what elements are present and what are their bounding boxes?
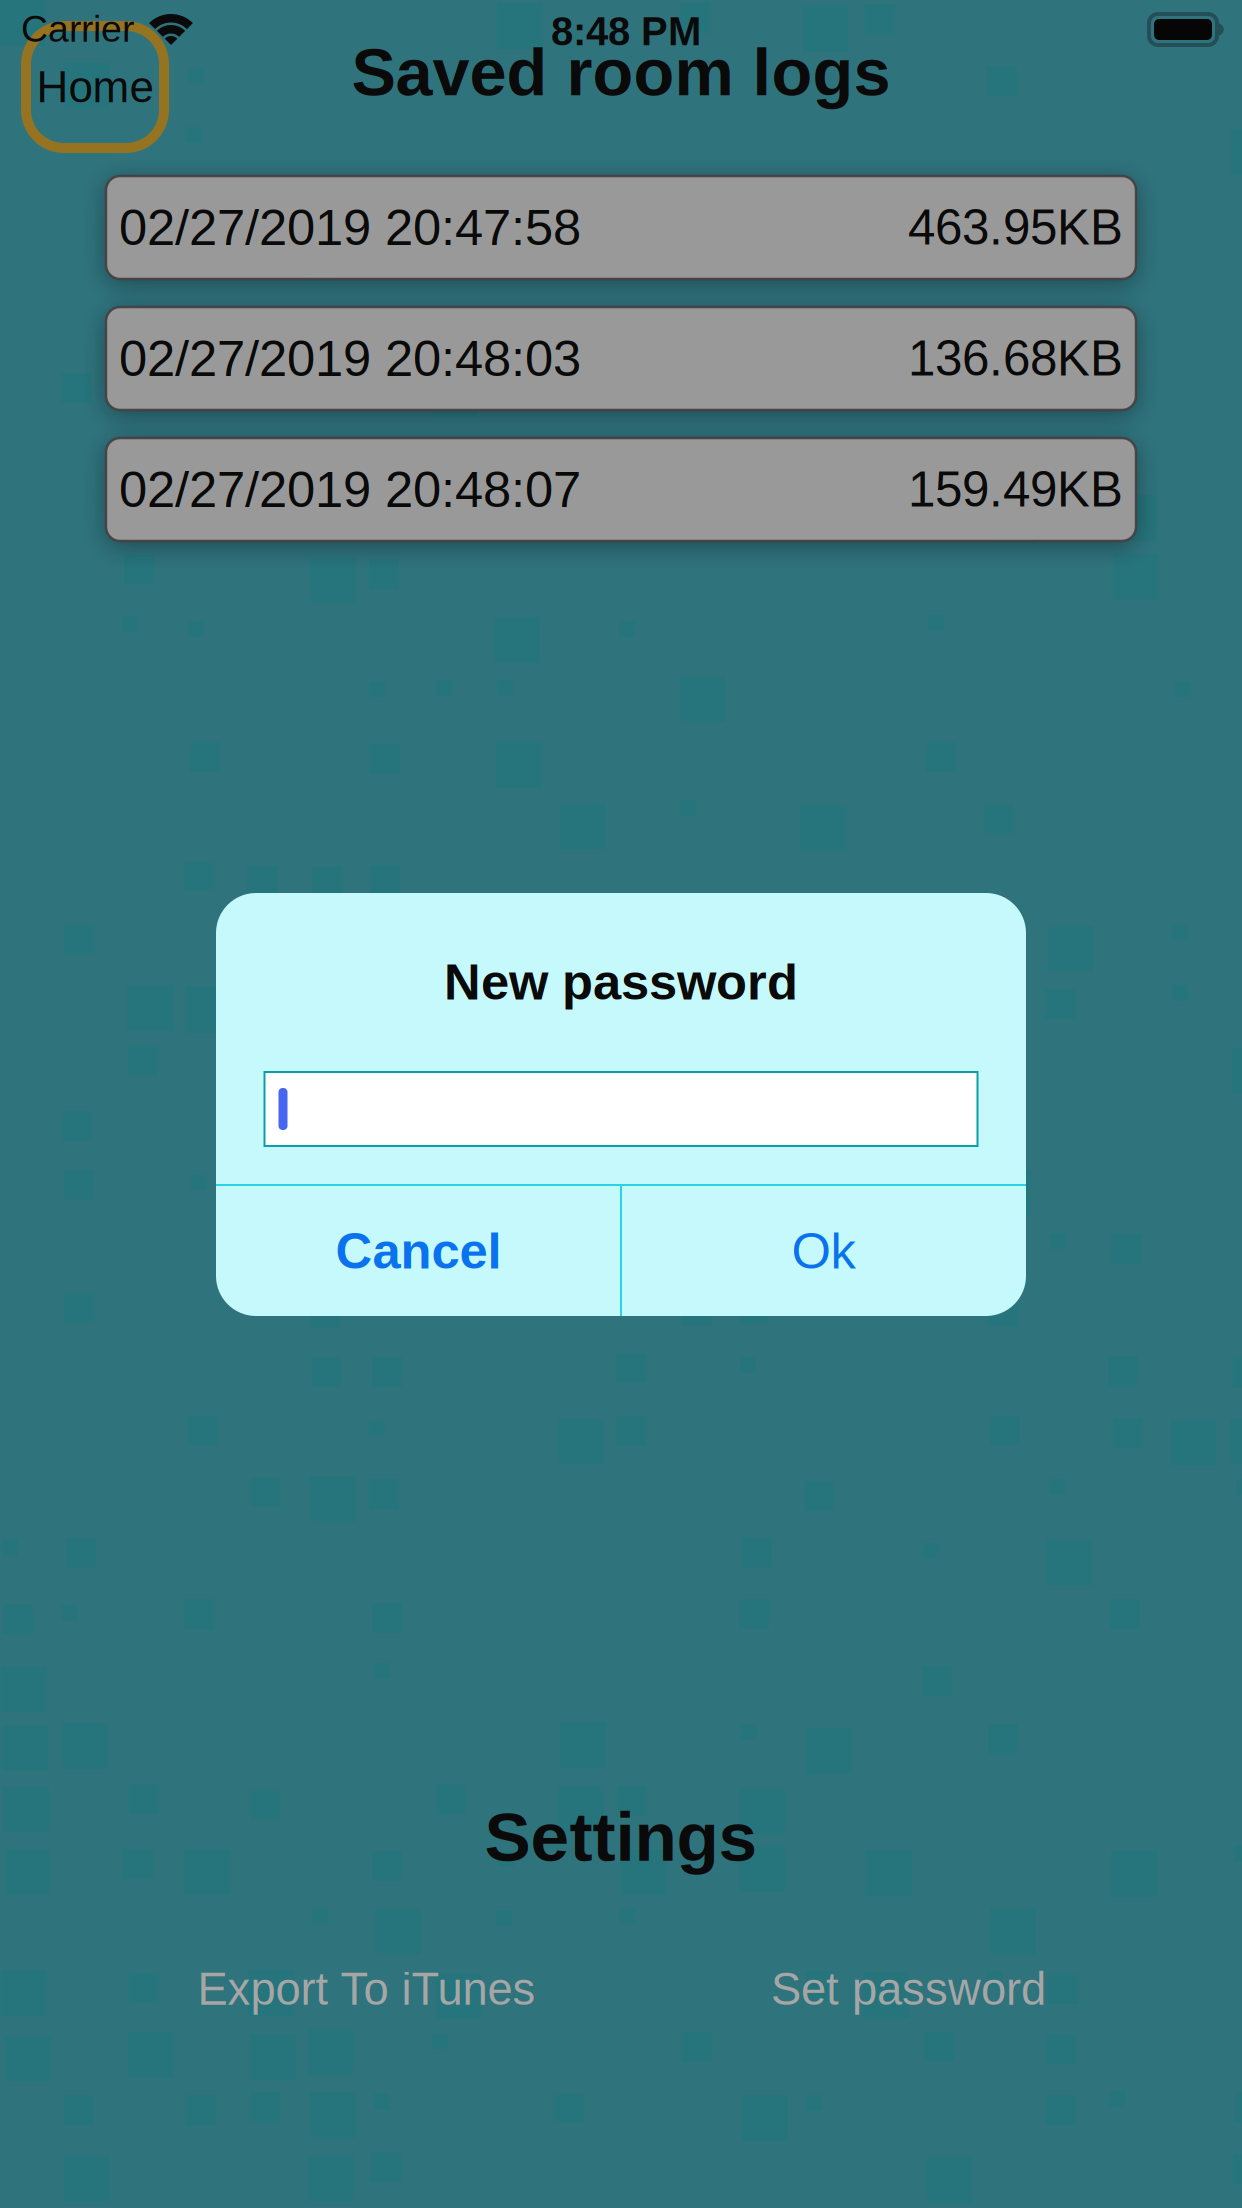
staticText: 02/27/2019 20:47:58 — [119, 199, 581, 256]
staticText: Cancel — [335, 1223, 501, 1279]
button[interactable]: Home — [26, 26, 164, 148]
staticText: New password — [444, 954, 798, 1010]
button[interactable]: Cancel — [217, 1186, 620, 1316]
staticText: 159.49KB — [908, 462, 1123, 517]
staticText: 8:48 PM — [551, 9, 701, 54]
staticText: 463.95KB — [908, 200, 1123, 255]
staticText: 02/27/2019 20:48:07 — [119, 461, 581, 518]
staticText: Set password — [771, 1964, 1046, 2014]
button[interactable]: 02/27/2019 20:48:03 — [106, 307, 1136, 410]
button[interactable]: 02/27/2019 20:47:58 — [106, 176, 1136, 279]
staticText: Settings — [484, 1798, 757, 1875]
staticText: Saved room logs — [351, 35, 890, 109]
button[interactable]: Set password — [703, 1944, 1114, 2034]
button[interactable]: Export To iTunes — [137, 1944, 596, 2034]
button[interactable]: 02/27/2019 20:48:07 — [106, 438, 1136, 541]
staticText: 136.68KB — [908, 331, 1123, 386]
button[interactable]: Ok — [622, 1186, 1025, 1316]
staticText: Export To iTunes — [197, 1964, 535, 2014]
staticText: Home — [36, 62, 153, 112]
button[interactable]: New password field — [264, 1072, 977, 1146]
staticText: Ok — [791, 1223, 855, 1279]
staticText: 02/27/2019 20:48:03 — [119, 330, 581, 387]
staticText: Carrier — [21, 8, 134, 50]
